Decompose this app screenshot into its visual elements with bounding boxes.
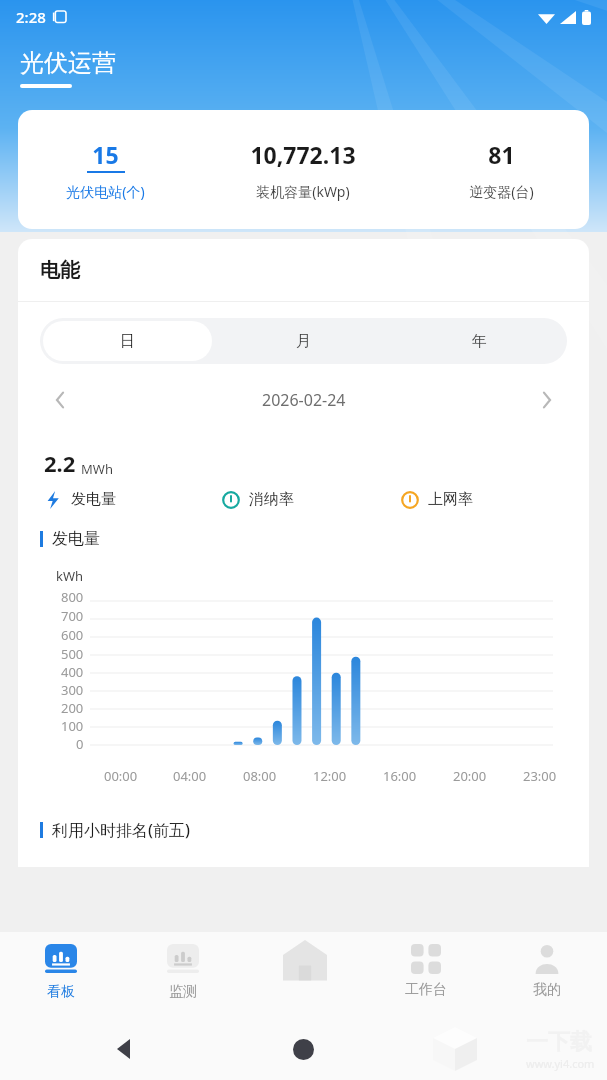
staticText: 500 bbox=[61, 645, 84, 663]
staticText: 400 bbox=[61, 663, 84, 681]
button[interactable]: 月 bbox=[218, 321, 388, 361]
staticText: 一下载 bbox=[526, 1028, 592, 1056]
staticText: 04:00 bbox=[173, 767, 207, 785]
button[interactable]: 我的 bbox=[486, 932, 607, 1018]
staticText: 月 bbox=[296, 332, 311, 351]
staticText: 电能 bbox=[40, 258, 80, 283]
staticText: 20:00 bbox=[453, 767, 487, 785]
staticText: 08:00 bbox=[243, 767, 277, 785]
staticText: 2.2 bbox=[44, 448, 76, 478]
other: Home bbox=[293, 1039, 314, 1060]
staticText: 15 bbox=[92, 139, 119, 170]
staticText: 光伏运营 bbox=[20, 48, 116, 78]
button[interactable]: 工作台 bbox=[365, 932, 486, 1018]
staticText: 100 bbox=[61, 717, 84, 735]
staticText: 光伏电站(个) bbox=[66, 182, 145, 201]
staticText: 81 bbox=[488, 139, 515, 170]
button[interactable]: 81 bbox=[413, 110, 589, 229]
staticText: 我的 bbox=[533, 981, 561, 999]
staticText: 年 bbox=[472, 332, 487, 351]
button[interactable]: 10,772.13 bbox=[193, 110, 413, 229]
staticText: 2:28 bbox=[16, 7, 46, 27]
staticText: kWh bbox=[56, 567, 84, 585]
staticText: 16:00 bbox=[383, 767, 417, 785]
staticText: 300 bbox=[61, 681, 84, 699]
staticText: 看板 bbox=[47, 983, 75, 1001]
staticText: 工作台 bbox=[405, 981, 447, 999]
staticText: 日 bbox=[120, 332, 135, 351]
staticText: www.yi4.com bbox=[526, 1056, 595, 1071]
button[interactable]: 年 bbox=[394, 321, 564, 361]
button[interactable]: Home bbox=[244, 932, 365, 1018]
staticText: 监测 bbox=[169, 983, 197, 1001]
staticText: 上网率 bbox=[428, 490, 473, 509]
staticText: 700 bbox=[61, 607, 84, 625]
other: Back bbox=[115, 1039, 135, 1059]
button[interactable]: Next day bbox=[529, 382, 565, 418]
staticText: 发电量 bbox=[52, 529, 100, 549]
staticText: 0 bbox=[76, 735, 84, 753]
button[interactable]: 15 bbox=[18, 110, 193, 229]
button[interactable]: 看板 bbox=[0, 932, 122, 1018]
staticText: 600 bbox=[61, 626, 84, 644]
staticText: 逆变器(台) bbox=[469, 182, 534, 201]
staticText: 2026-02-24 bbox=[262, 389, 346, 411]
staticText: 装机容量(kWp) bbox=[256, 182, 350, 201]
staticText: MWh bbox=[81, 460, 113, 478]
staticText: 800 bbox=[61, 588, 84, 606]
staticText: 利用小时排名(前五) bbox=[52, 819, 190, 841]
staticText: 发电量 bbox=[71, 490, 116, 509]
staticText: 10,772.13 bbox=[250, 139, 356, 170]
button[interactable]: 监测 bbox=[122, 932, 244, 1018]
staticText: 23:00 bbox=[523, 767, 557, 785]
staticText: 200 bbox=[61, 699, 84, 717]
staticText: 12:00 bbox=[313, 767, 347, 785]
staticText: 消纳率 bbox=[249, 490, 294, 509]
staticText: 00:00 bbox=[104, 767, 138, 785]
button[interactable]: Previous day bbox=[42, 382, 78, 418]
button[interactable]: 日 bbox=[43, 321, 212, 361]
